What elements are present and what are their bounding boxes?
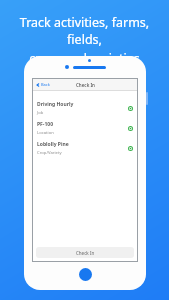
staticText: Loblolly Pine (37, 141, 69, 148)
staticText: PF-100 (37, 121, 54, 128)
button[interactable]: Back (35, 82, 51, 87)
staticText: Track activities, farms, fields, (6, 14, 163, 48)
button[interactable]: Check In (36, 247, 134, 258)
staticText: Check In (76, 82, 95, 88)
other: Completed (128, 126, 133, 131)
other: Completed (128, 146, 133, 151)
staticText: Back (41, 82, 50, 87)
other: Completed (128, 106, 133, 111)
button[interactable]: PF-100 (33, 118, 137, 138)
staticText: Job (37, 110, 44, 116)
button[interactable]: Home (79, 268, 92, 281)
staticText: Driving Hourly (37, 101, 74, 108)
staticText: Check In (76, 250, 95, 256)
button[interactable]: Driving Hourly (33, 98, 137, 118)
staticText: Crop/Variety (37, 150, 62, 156)
button[interactable]: Loblolly Pine (33, 138, 137, 158)
staticText: crops and varieties (29, 50, 140, 67)
staticText: Location (37, 130, 54, 136)
